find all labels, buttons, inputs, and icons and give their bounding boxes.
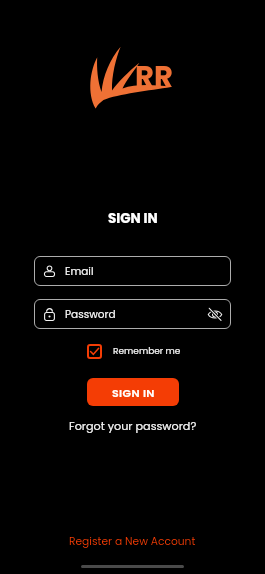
staticText: SIGN IN bbox=[112, 385, 155, 400]
button[interactable]: Email bbox=[34, 256, 231, 286]
button[interactable]: Register a New Account bbox=[69, 534, 196, 549]
staticText: RR bbox=[135, 57, 173, 98]
button[interactable]: Remember me checkbox bbox=[87, 344, 102, 359]
staticText: SIGN IN bbox=[108, 209, 158, 228]
button[interactable]: Password bbox=[34, 299, 231, 329]
button[interactable]: SIGN IN bbox=[87, 378, 179, 406]
staticText: Remember me bbox=[113, 345, 181, 358]
button[interactable]: Toggle password visibility bbox=[207, 307, 222, 322]
staticText: Email bbox=[65, 264, 94, 279]
staticText: Password bbox=[65, 307, 116, 322]
button[interactable]: Forgot your password? bbox=[69, 418, 197, 434]
